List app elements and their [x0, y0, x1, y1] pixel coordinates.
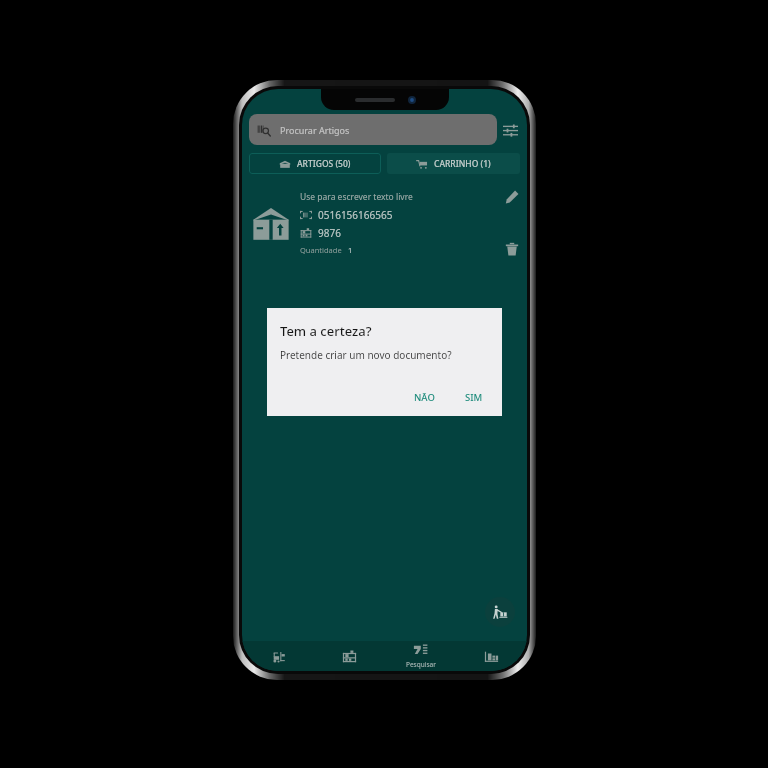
staticText: Tem a certeza?	[280, 322, 372, 340]
staticText: Use para escrever texto livre	[300, 191, 413, 203]
button[interactable]: Editar	[499, 184, 525, 210]
staticText: 0516156166565	[318, 208, 393, 222]
button[interactable]: Eliminar	[499, 236, 525, 262]
button[interactable]: Pesquisar	[385, 641, 456, 671]
staticText: SIM	[465, 391, 483, 404]
button[interactable]: Novo documento	[485, 597, 515, 627]
staticText: NÃO	[414, 391, 435, 404]
staticText: 9876	[318, 226, 341, 240]
button[interactable]: NÃO	[405, 386, 444, 409]
staticText: Pesquisar	[406, 660, 436, 669]
button[interactable]: ARTIGOS (50)	[249, 153, 381, 174]
staticText: CARRINHO (1)	[434, 158, 491, 170]
staticText: Procurar Artigos	[280, 124, 350, 136]
staticText: 1	[348, 245, 353, 255]
button[interactable]: SIM	[456, 386, 492, 409]
staticText: Pretende criar um novo documento?	[280, 348, 452, 362]
button[interactable]: Use para escrever texto livre	[242, 184, 527, 262]
button[interactable]: Navegação	[314, 641, 385, 671]
button[interactable]: Filtros	[497, 117, 523, 143]
button[interactable]: Navegação	[456, 641, 527, 671]
staticText: Quantidade	[300, 245, 342, 255]
staticText: ARTIGOS (50)	[297, 158, 351, 170]
button[interactable]: Navegação	[242, 641, 314, 671]
button[interactable]: Procurar Artigos	[249, 114, 497, 145]
button[interactable]: CARRINHO (1)	[387, 153, 520, 174]
